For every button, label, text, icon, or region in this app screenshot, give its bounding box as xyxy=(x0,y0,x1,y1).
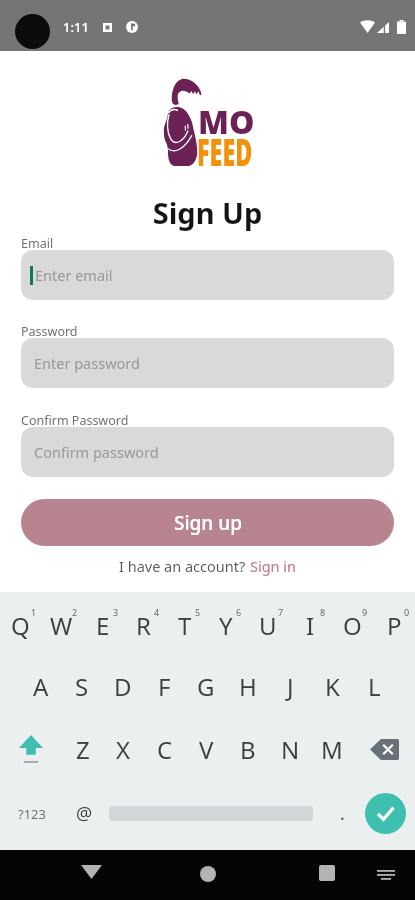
staticText: N xyxy=(281,733,300,766)
button[interactable]: M xyxy=(311,719,353,780)
staticText: G xyxy=(197,670,215,703)
staticText: P xyxy=(387,609,402,642)
button[interactable]: Home xyxy=(173,850,243,900)
button[interactable]: R xyxy=(123,595,164,656)
button[interactable]: V xyxy=(185,719,227,780)
button[interactable]: Space xyxy=(104,783,329,844)
staticText: Confirm Password xyxy=(21,412,129,429)
staticText: 3 xyxy=(113,606,119,618)
staticText: R xyxy=(136,609,151,642)
staticText: MO xyxy=(198,100,255,144)
button[interactable]: W xyxy=(41,595,82,656)
button[interactable]: T xyxy=(164,595,205,656)
button[interactable]: U xyxy=(247,595,289,656)
button[interactable]: B xyxy=(227,719,269,780)
staticText: C xyxy=(157,733,173,766)
staticText: U xyxy=(259,609,277,642)
staticText: @ xyxy=(76,801,93,826)
staticText: ?123 xyxy=(18,805,46,823)
staticText: J xyxy=(287,670,294,703)
button[interactable]: Confirm password xyxy=(21,427,394,477)
staticText: 5 xyxy=(195,606,201,618)
button[interactable]: Recents xyxy=(292,850,362,900)
staticText: Enter email xyxy=(35,265,113,285)
button[interactable]: P xyxy=(373,595,415,656)
staticText: E xyxy=(96,609,110,642)
button[interactable]: Enter password xyxy=(21,338,394,388)
button[interactable]: Sign up xyxy=(21,499,394,546)
button[interactable]: Z xyxy=(62,719,103,780)
staticText: F xyxy=(158,670,171,703)
button[interactable]: X xyxy=(103,719,144,780)
button[interactable]: F xyxy=(143,656,185,717)
staticText: O xyxy=(343,609,362,642)
button[interactable]: Back xyxy=(56,850,126,900)
staticText: 1:11 xyxy=(63,18,89,36)
staticText: M xyxy=(321,733,343,766)
staticText: FEED xyxy=(197,126,253,177)
staticText: D xyxy=(114,670,132,703)
button[interactable]: @ xyxy=(64,783,104,844)
staticText: V xyxy=(199,733,214,766)
staticText: L xyxy=(368,670,381,703)
staticText: Y xyxy=(219,609,233,642)
button[interactable]: Q xyxy=(0,595,41,656)
staticText: I have an account? xyxy=(119,556,250,576)
button[interactable]: K xyxy=(311,656,353,717)
staticText: T xyxy=(178,609,192,642)
staticText: K xyxy=(325,670,340,703)
button[interactable]: O xyxy=(331,595,373,656)
staticText: 2 xyxy=(72,606,78,618)
staticText: Z xyxy=(76,733,90,766)
button[interactable]: D xyxy=(102,656,143,717)
button[interactable]: Shift xyxy=(0,719,62,780)
staticText: Sign up xyxy=(174,510,242,536)
staticText: S xyxy=(75,670,89,703)
staticText: Password xyxy=(21,323,78,340)
button[interactable]: E xyxy=(82,595,123,656)
staticText: 7 xyxy=(278,606,284,618)
staticText: Sign Up xyxy=(0,193,415,232)
button[interactable]: I xyxy=(289,595,331,656)
staticText: W xyxy=(50,609,73,642)
staticText: A xyxy=(33,670,49,703)
button[interactable]: J xyxy=(269,656,311,717)
staticText: Enter password xyxy=(34,353,140,373)
button[interactable]: ?123 xyxy=(0,783,64,844)
button[interactable]: N xyxy=(269,719,311,780)
button[interactable]: H xyxy=(227,656,269,717)
button[interactable]: Backspace xyxy=(353,719,415,780)
staticText: I xyxy=(306,609,315,642)
staticText: B xyxy=(240,733,256,766)
button[interactable]: Enter email xyxy=(21,250,394,300)
staticText: Q xyxy=(11,609,30,642)
staticText: 9 xyxy=(362,606,368,618)
staticText: 4 xyxy=(154,606,160,618)
staticText: Sign in xyxy=(250,556,297,576)
button[interactable]: S xyxy=(61,656,102,717)
staticText: 1 xyxy=(31,606,37,618)
button[interactable]: Switch keyboard xyxy=(366,850,406,900)
button[interactable]: L xyxy=(353,656,395,717)
staticText: H xyxy=(239,670,257,703)
staticText: 6 xyxy=(236,606,242,618)
button[interactable]: C xyxy=(144,719,185,780)
button[interactable]: Y xyxy=(205,595,247,656)
staticText: 0 xyxy=(404,606,410,618)
staticText: Email xyxy=(21,235,54,252)
staticText: . xyxy=(340,801,345,826)
staticText: Confirm password xyxy=(34,442,159,462)
button[interactable]: A xyxy=(20,656,61,717)
button[interactable]: Done xyxy=(355,783,415,844)
button[interactable]: G xyxy=(185,656,227,717)
staticText: 8 xyxy=(320,606,326,618)
staticText: X xyxy=(116,733,131,766)
button[interactable]: . xyxy=(329,783,355,844)
button[interactable]: Sign in xyxy=(250,556,297,576)
